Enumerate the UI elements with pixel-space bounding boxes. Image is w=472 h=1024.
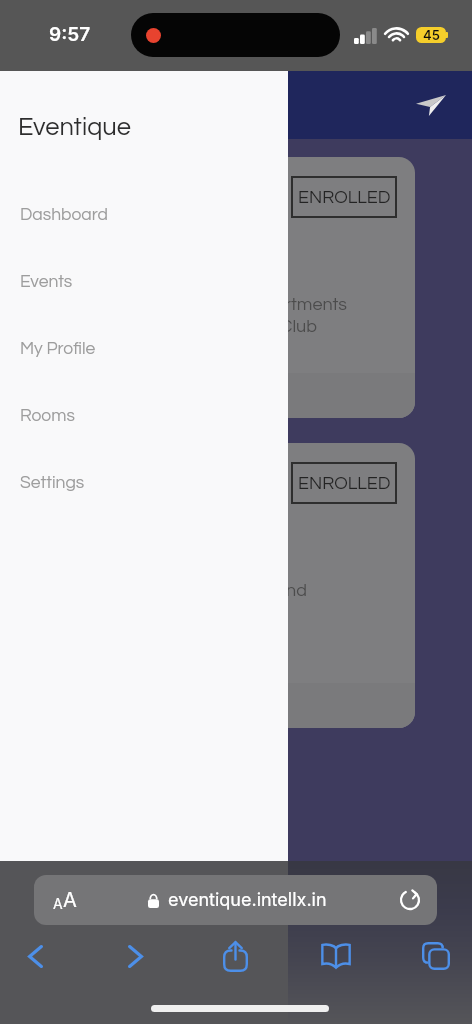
staticText: ENROLLED bbox=[298, 474, 391, 493]
button[interactable]: Send bbox=[411, 85, 451, 125]
button[interactable]: A bbox=[34, 875, 437, 925]
button[interactable]: Events bbox=[0, 248, 288, 315]
staticText: A bbox=[63, 888, 77, 912]
staticText: Band bbox=[16, 581, 307, 600]
other: Reload bbox=[398, 888, 422, 912]
staticText: eventique.intellx.in bbox=[168, 889, 327, 911]
staticText: ENROLLED bbox=[298, 188, 391, 207]
button[interactable]: Bookmarks bbox=[316, 938, 355, 974]
staticText: A bbox=[53, 895, 63, 912]
staticText: Dashboard bbox=[20, 206, 108, 224]
button[interactable]: Forward bbox=[116, 938, 155, 974]
button[interactable]: ENROLLED bbox=[16, 157, 415, 418]
staticText: Rooms bbox=[20, 407, 75, 425]
staticText: Club bbox=[16, 317, 317, 336]
staticText: 45 bbox=[423, 27, 440, 43]
button[interactable]: Back bbox=[16, 938, 55, 974]
button[interactable]: Rooms bbox=[0, 382, 288, 449]
button[interactable]: My Profile bbox=[0, 315, 288, 382]
button[interactable]: Settings bbox=[0, 449, 288, 516]
staticText: Events bbox=[20, 273, 73, 291]
staticText: Settings bbox=[20, 474, 85, 492]
button[interactable]: ENROLLED bbox=[16, 443, 415, 728]
button[interactable]: Tabs bbox=[416, 938, 455, 974]
staticText: Departments bbox=[16, 295, 347, 314]
staticText: Eventique bbox=[18, 114, 131, 140]
button[interactable]: Share bbox=[216, 938, 255, 974]
button[interactable]: Dashboard bbox=[0, 181, 288, 248]
staticText: 9:57 bbox=[49, 23, 91, 46]
staticText: My Profile bbox=[20, 340, 96, 358]
